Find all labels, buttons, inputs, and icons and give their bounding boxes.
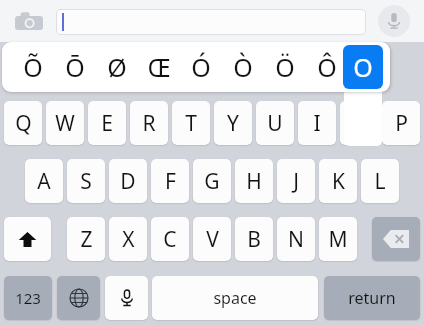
staticText: F <box>165 167 176 196</box>
button[interactable]: I <box>298 101 336 145</box>
staticText: I <box>313 109 321 138</box>
button[interactable]: G <box>193 159 231 203</box>
button[interactable]: H <box>235 159 273 203</box>
staticText: D <box>120 167 136 196</box>
button[interactable]: T <box>172 101 210 145</box>
staticText: P <box>395 109 408 138</box>
staticText: O <box>353 50 373 84</box>
staticText: A <box>37 167 51 196</box>
button[interactable]: Ō <box>54 45 96 89</box>
staticText: Ó <box>191 50 211 84</box>
staticText: K <box>332 167 345 196</box>
button[interactable]: Shift <box>4 217 51 261</box>
button[interactable]: D <box>109 159 147 203</box>
staticText: space <box>213 287 257 309</box>
staticText: S <box>80 167 92 196</box>
staticText: Ø <box>107 50 127 84</box>
button[interactable]: Ø <box>96 45 138 89</box>
button[interactable]: N <box>277 217 315 261</box>
staticText: Œ <box>147 50 171 84</box>
button[interactable]: F <box>151 159 189 203</box>
button[interactable] <box>56 9 366 35</box>
button[interactable]: Õ <box>12 45 54 89</box>
button[interactable]: Next keyboard <box>57 276 100 320</box>
button[interactable]: Œ <box>138 45 180 89</box>
button[interactable]: Y <box>214 101 252 145</box>
button[interactable]: W <box>46 101 84 145</box>
staticText: H <box>246 167 262 196</box>
button[interactable]: K <box>319 159 357 203</box>
staticText: V <box>206 225 219 254</box>
button[interactable]: B <box>235 217 273 261</box>
button[interactable]: Z <box>67 217 105 261</box>
button[interactable]: return <box>324 276 420 320</box>
staticText: C <box>163 225 177 254</box>
button[interactable]: Camera <box>14 9 44 34</box>
button[interactable]: R <box>130 101 168 145</box>
staticText: E <box>101 109 113 138</box>
staticText: R <box>142 109 156 138</box>
button[interactable]: J <box>277 159 315 203</box>
button[interactable]: A <box>25 159 63 203</box>
staticText: return <box>348 287 396 309</box>
staticText: X <box>122 225 135 254</box>
button[interactable]: Q <box>4 101 42 145</box>
staticText: L <box>374 167 386 196</box>
staticText: M <box>328 225 348 254</box>
staticText: 123 <box>15 288 41 308</box>
staticText: J <box>293 167 299 196</box>
staticText: U <box>267 109 283 138</box>
staticText: Y <box>227 109 239 138</box>
button[interactable]: C <box>151 217 189 261</box>
button[interactable]: V <box>193 217 231 261</box>
staticText: Q <box>15 109 32 138</box>
staticText: Ö <box>275 50 295 84</box>
button[interactable]: 123 <box>4 276 52 320</box>
staticText: Ò <box>233 50 253 84</box>
staticText: W <box>55 109 75 138</box>
button[interactable]: X <box>109 217 147 261</box>
button[interactable]: Ô <box>306 45 348 89</box>
button[interactable]: Backspace <box>372 217 420 261</box>
staticText: Ô <box>317 50 337 84</box>
staticText: T <box>185 109 197 138</box>
button[interactable]: Ò <box>222 45 264 89</box>
button[interactable]: Ó <box>180 45 222 89</box>
button[interactable]: O <box>340 101 378 145</box>
staticText: Ō <box>65 50 85 84</box>
staticText: G <box>204 167 220 196</box>
button[interactable]: L <box>361 159 399 203</box>
staticText: Õ <box>23 50 43 84</box>
button[interactable]: P <box>382 101 420 145</box>
button[interactable]: S <box>67 159 105 203</box>
button[interactable]: M <box>319 217 357 261</box>
staticText: Z <box>80 225 93 254</box>
button[interactable]: Ö <box>264 45 306 89</box>
button[interactable]: O <box>343 45 383 89</box>
staticText: N <box>288 225 304 254</box>
button[interactable]: space <box>152 276 318 320</box>
button[interactable]: Dictation <box>105 276 148 320</box>
button[interactable]: E <box>88 101 126 145</box>
button[interactable]: U <box>256 101 294 145</box>
button[interactable]: Dictate <box>378 5 410 37</box>
staticText: B <box>247 225 261 254</box>
